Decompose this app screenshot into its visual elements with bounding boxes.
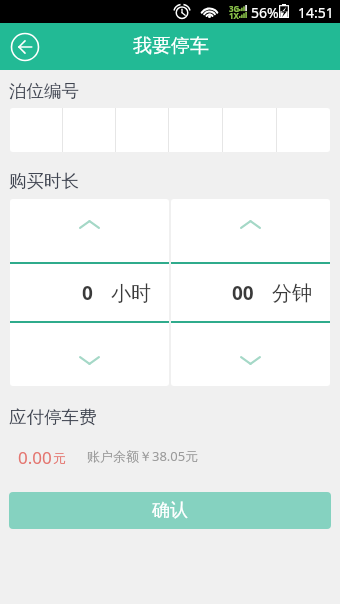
button[interactable]: Increase [10,199,169,262]
staticText: 3G [229,3,240,14]
button[interactable]: Back [10,32,40,62]
staticText: 0.00 [18,446,52,469]
button[interactable]: Decrease [10,323,169,386]
staticText: 账户余额￥38.05元 [87,447,199,465]
staticText: 确认 [152,499,188,522]
button[interactable]: 确认 [9,492,331,529]
staticText: 0 [82,280,93,306]
button[interactable]: Decrease [171,323,330,386]
staticText: 泊位编号 [9,80,79,102]
staticText: 元 [53,450,66,466]
staticText: 小时 [111,281,151,306]
staticText: 1X [229,10,239,21]
staticText: 分钟 [272,281,312,306]
staticText: 我要停车 [133,34,209,58]
staticText: 购买时长 [9,170,79,192]
staticText: 00 [232,280,254,306]
staticText: 应付停车费 [9,406,97,428]
staticText: 14:51 [298,3,334,22]
button[interactable]: Increase [171,199,330,262]
staticText: 56% [251,3,279,22]
